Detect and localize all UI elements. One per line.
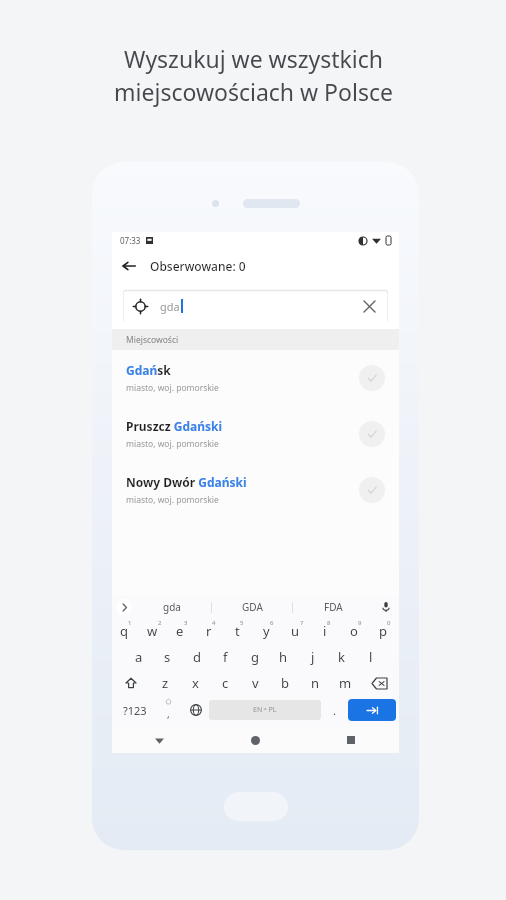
button[interactable]: v <box>240 670 270 696</box>
button[interactable]: Back <box>112 249 146 283</box>
staticText: s <box>164 648 171 666</box>
staticText: a <box>135 648 143 666</box>
button[interactable]: Shift <box>112 670 150 696</box>
button[interactable]: s <box>153 644 182 670</box>
button[interactable]: Gdańsk <box>112 350 399 406</box>
staticText: Pruszcz Gdański <box>126 418 223 434</box>
button[interactable]: l <box>356 644 385 670</box>
staticText: 0 <box>387 619 391 627</box>
button[interactable]: z <box>150 670 180 696</box>
button[interactable]: o <box>341 618 370 644</box>
button[interactable]: Follow <box>359 477 385 503</box>
staticText: y <box>263 622 270 640</box>
button[interactable]: y <box>254 618 283 644</box>
staticText: miasto, woj. pomorskie <box>126 438 219 450</box>
button[interactable]: GDA <box>212 596 292 618</box>
staticText: c <box>222 674 229 692</box>
button[interactable]: a <box>125 644 153 670</box>
button[interactable]: f <box>211 644 240 670</box>
button[interactable]: Nowy Dwór Gdański <box>112 462 399 518</box>
staticText: Miejscowości <box>126 334 179 346</box>
staticText: t <box>235 622 240 640</box>
button[interactable]: k <box>327 644 356 670</box>
button[interactable]: p <box>370 618 399 644</box>
staticText: r <box>206 622 212 640</box>
staticText: v <box>252 674 259 692</box>
button[interactable]: g <box>240 644 269 670</box>
staticText: x <box>192 674 199 692</box>
button[interactable]: gda <box>123 289 388 323</box>
staticText: Obserwowane: 0 <box>150 258 246 274</box>
staticText: . <box>333 703 336 718</box>
button[interactable]: ?123 <box>115 696 155 724</box>
button[interactable]: Follow <box>359 421 385 447</box>
staticText: p <box>379 622 387 640</box>
button[interactable]: Voice input <box>373 596 399 618</box>
button[interactable]: w <box>140 618 168 644</box>
staticText: gda <box>163 600 181 614</box>
button[interactable]: Recents <box>303 727 399 753</box>
button[interactable]: Clear <box>354 291 384 321</box>
staticText: k <box>338 648 345 666</box>
staticText: o <box>350 622 358 640</box>
button[interactable]: gda <box>132 596 211 618</box>
staticText: 5 <box>240 619 244 627</box>
staticText: 8 <box>327 619 331 627</box>
staticText: w <box>147 622 158 640</box>
staticText: i <box>323 622 327 640</box>
staticText: b <box>281 674 289 692</box>
button[interactable]: u <box>283 618 312 644</box>
button[interactable]: j <box>298 644 327 670</box>
button[interactable]: Change keyboard language <box>182 696 209 724</box>
staticText: ?123 <box>123 703 147 718</box>
button[interactable]: FDA <box>293 596 373 618</box>
button[interactable]: r <box>196 618 225 644</box>
button[interactable]: q <box>112 618 140 644</box>
button[interactable]: x <box>180 670 210 696</box>
staticText: Wyszukuj we wszystkich miejscowościach w… <box>114 43 393 108</box>
button[interactable]: e <box>168 618 196 644</box>
button[interactable]: c <box>210 670 240 696</box>
button[interactable]: Backspace <box>360 670 399 696</box>
staticText: 7 <box>300 619 304 627</box>
button[interactable]: t <box>225 618 254 644</box>
button[interactable]: n <box>300 670 330 696</box>
staticText: 3 <box>184 619 188 627</box>
staticText: z <box>162 674 169 692</box>
staticText: d <box>193 648 201 666</box>
button[interactable]: b <box>270 670 300 696</box>
button[interactable]: EN • PL <box>209 700 321 720</box>
button[interactable]: Follow <box>359 365 385 391</box>
button[interactable]: , <box>155 696 182 724</box>
staticText: gda <box>160 299 180 314</box>
staticText: h <box>279 648 288 666</box>
staticText: miasto, woj. pomorskie <box>126 382 219 394</box>
staticText: FDA <box>324 600 343 614</box>
staticText: 9 <box>358 619 362 627</box>
staticText: g <box>251 648 259 666</box>
staticText: 6 <box>270 619 274 627</box>
button[interactable]: m <box>330 670 360 696</box>
button[interactable]: Pruszcz Gdański <box>112 406 399 462</box>
button[interactable]: i <box>312 618 341 644</box>
staticText: n <box>311 674 320 692</box>
button[interactable]: h <box>269 644 298 670</box>
staticText: miasto, woj. pomorskie <box>126 494 219 506</box>
staticText: j <box>311 648 315 666</box>
button[interactable]: Home <box>207 727 303 753</box>
staticText: Nowy Dwór Gdański <box>126 474 247 490</box>
staticText: 07:33 <box>120 235 141 246</box>
staticText: q <box>120 622 128 640</box>
button[interactable]: . <box>321 696 348 724</box>
button[interactable]: Expand <box>116 599 132 615</box>
button[interactable]: Next <box>348 699 396 721</box>
staticText: l <box>369 648 373 666</box>
staticText: , <box>167 707 170 721</box>
staticText: Gdańsk <box>126 362 171 378</box>
staticText: GDA <box>242 600 263 614</box>
staticText: f <box>223 648 228 666</box>
button[interactable]: d <box>182 644 211 670</box>
button[interactable]: Back <box>112 727 207 753</box>
staticText: m <box>339 674 352 692</box>
staticText: 2 <box>158 619 162 627</box>
